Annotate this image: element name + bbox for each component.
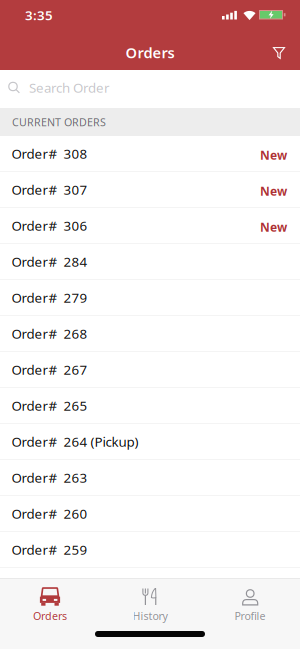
button[interactable]: Order# 263 [0,460,300,496]
staticText: New [260,219,287,235]
staticText: 3:35 [25,6,53,24]
button[interactable]: Order# 268 [0,316,300,352]
staticText: Order# 260 [11,505,87,522]
staticText: History [132,609,167,623]
button[interactable]: Filter [273,33,300,69]
staticText: CURRENT ORDERS [12,115,106,129]
button[interactable]: Order# 265 [0,388,300,424]
button[interactable]: Order# 308 [0,136,300,172]
staticText: Order# 284 [11,253,87,270]
staticText: Order# 263 [11,469,87,486]
staticText: Order# 279 [11,289,87,306]
staticText: Search Order [29,79,110,96]
button[interactable]: Orders [0,587,100,623]
button[interactable]: Order# 260 [0,496,300,532]
button[interactable]: Order# 264 (Pickup) [0,424,300,460]
staticText: Order# 306 [11,217,87,234]
button[interactable]: Order# 284 [0,244,300,280]
staticText: Order# 308 [11,145,87,162]
staticText: Profile [234,609,265,623]
button[interactable]: Order# 259 [0,532,300,568]
staticText: Orders [125,43,174,62]
staticText: New [260,183,287,199]
button[interactable]: Search Order [0,70,300,108]
staticText: Order# 268 [11,325,87,342]
button[interactable]: Order# 267 [0,352,300,388]
button[interactable]: Order# 307 [0,172,300,208]
button[interactable]: History [100,587,200,623]
staticText: Order# 264 (Pickup) [11,433,138,450]
button[interactable]: Profile [200,587,300,623]
staticText: New [260,147,287,163]
staticText: Order# 259 [11,541,87,558]
button[interactable]: Order# 279 [0,280,300,316]
button[interactable]: Order# 306 [0,208,300,244]
staticText: Order# 265 [11,397,87,414]
staticText: Order# 267 [11,361,87,378]
staticText: Order# 307 [11,181,87,198]
staticText: Orders [33,609,67,623]
